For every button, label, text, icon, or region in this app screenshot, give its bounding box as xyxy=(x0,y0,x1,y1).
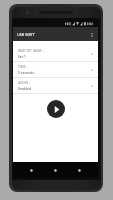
button[interactable]: Back xyxy=(26,165,37,176)
staticText: USB WATT xyxy=(17,32,35,37)
button[interactable]: Play xyxy=(47,100,65,118)
staticText: TIME : xyxy=(18,65,28,69)
staticText: 5 seconds xyxy=(18,70,35,75)
button[interactable]: WAIT SET NAME : xyxy=(13,46,98,62)
staticText: Set 1 xyxy=(18,54,26,59)
button[interactable]: TIME : xyxy=(13,62,98,78)
button[interactable]: More options xyxy=(86,29,97,40)
staticText: Enabled xyxy=(18,86,32,91)
button[interactable]: Home xyxy=(50,165,61,176)
button[interactable]: AUDIO : xyxy=(13,78,98,94)
button[interactable]: Recents xyxy=(74,165,85,176)
staticText: WAIT SET NAME : xyxy=(18,49,44,53)
staticText: AUDIO : xyxy=(18,81,30,85)
